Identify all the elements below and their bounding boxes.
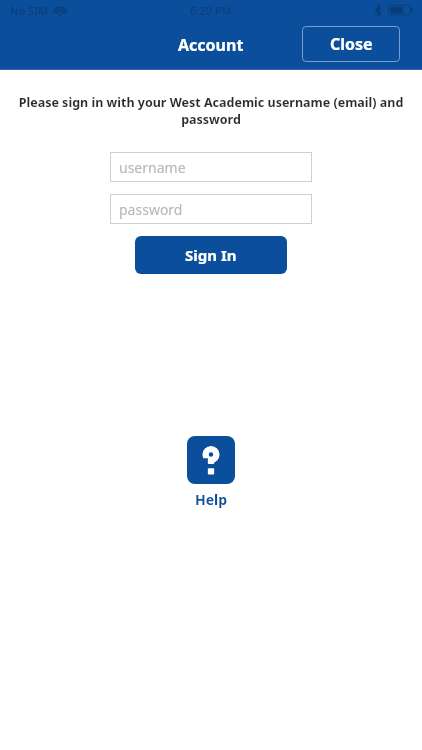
staticText: Help bbox=[195, 490, 228, 509]
staticText: Account bbox=[178, 34, 244, 56]
staticText: username bbox=[119, 158, 186, 177]
button[interactable]: Sign In bbox=[135, 236, 287, 274]
button[interactable]: Account bbox=[170, 30, 252, 60]
staticText: Sign In bbox=[185, 245, 237, 265]
button[interactable]: Help bbox=[183, 432, 239, 513]
button[interactable]: Close bbox=[302, 26, 400, 62]
button[interactable]: username bbox=[110, 152, 312, 182]
staticText: password bbox=[119, 200, 183, 219]
staticText: Close bbox=[330, 33, 373, 55]
staticText: No SIM bbox=[10, 3, 49, 18]
staticText: 6:20 PM bbox=[190, 3, 232, 18]
button[interactable]: password bbox=[110, 194, 312, 224]
staticText: Please sign in with your West Academic u… bbox=[16, 94, 406, 128]
